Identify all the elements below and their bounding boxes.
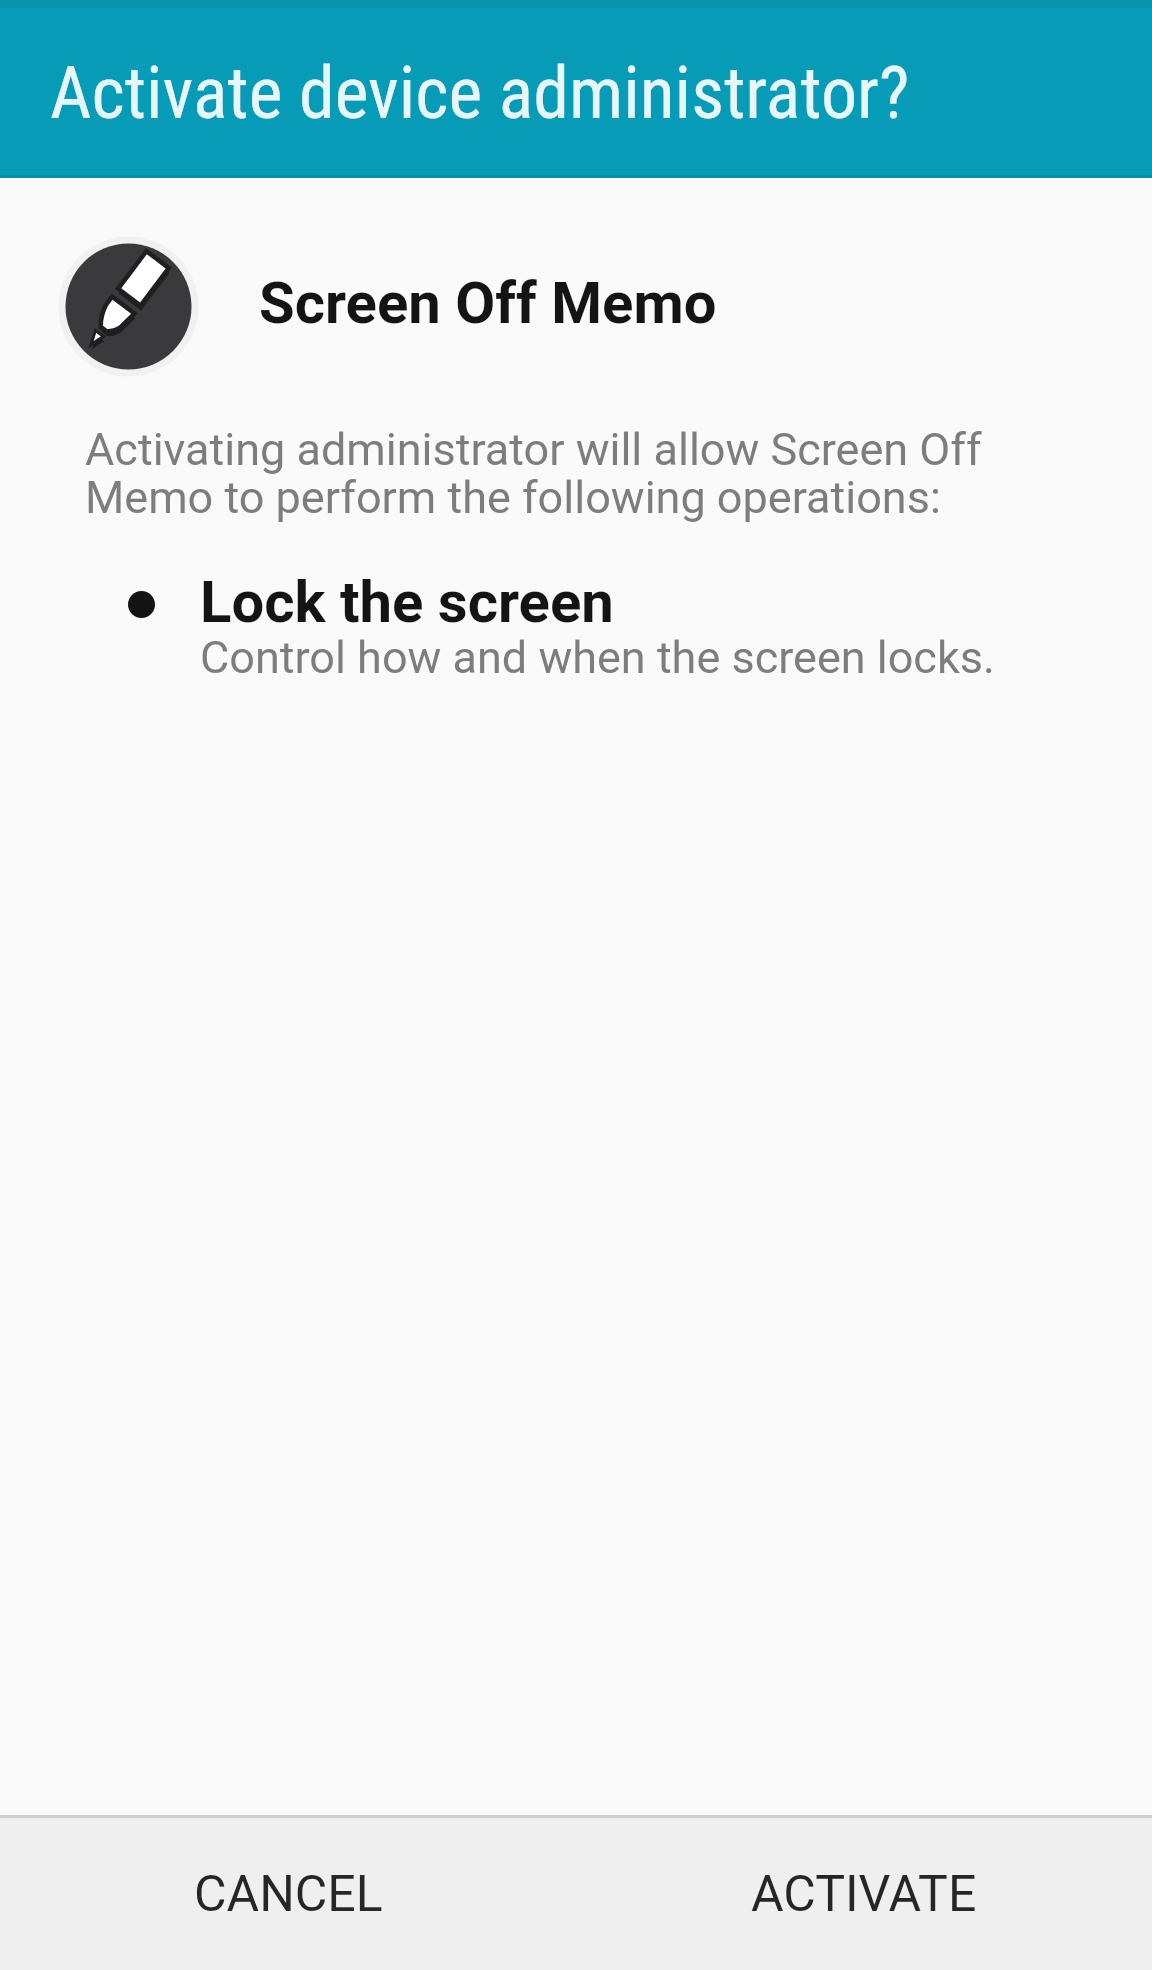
staticText: Control how and when the screen locks. xyxy=(200,631,995,684)
staticText: CANCEL xyxy=(194,1865,383,1924)
staticText: ACTIVATE xyxy=(751,1865,977,1924)
staticText: Activating administrator will allow Scre… xyxy=(85,423,982,524)
staticText: Lock the screen xyxy=(200,568,614,636)
button[interactable]: CANCEL xyxy=(0,1818,576,1970)
staticText: Screen Off Memo xyxy=(259,269,717,337)
button[interactable]: ACTIVATE xyxy=(576,1818,1152,1970)
staticText: Activate device administrator? xyxy=(50,51,910,135)
